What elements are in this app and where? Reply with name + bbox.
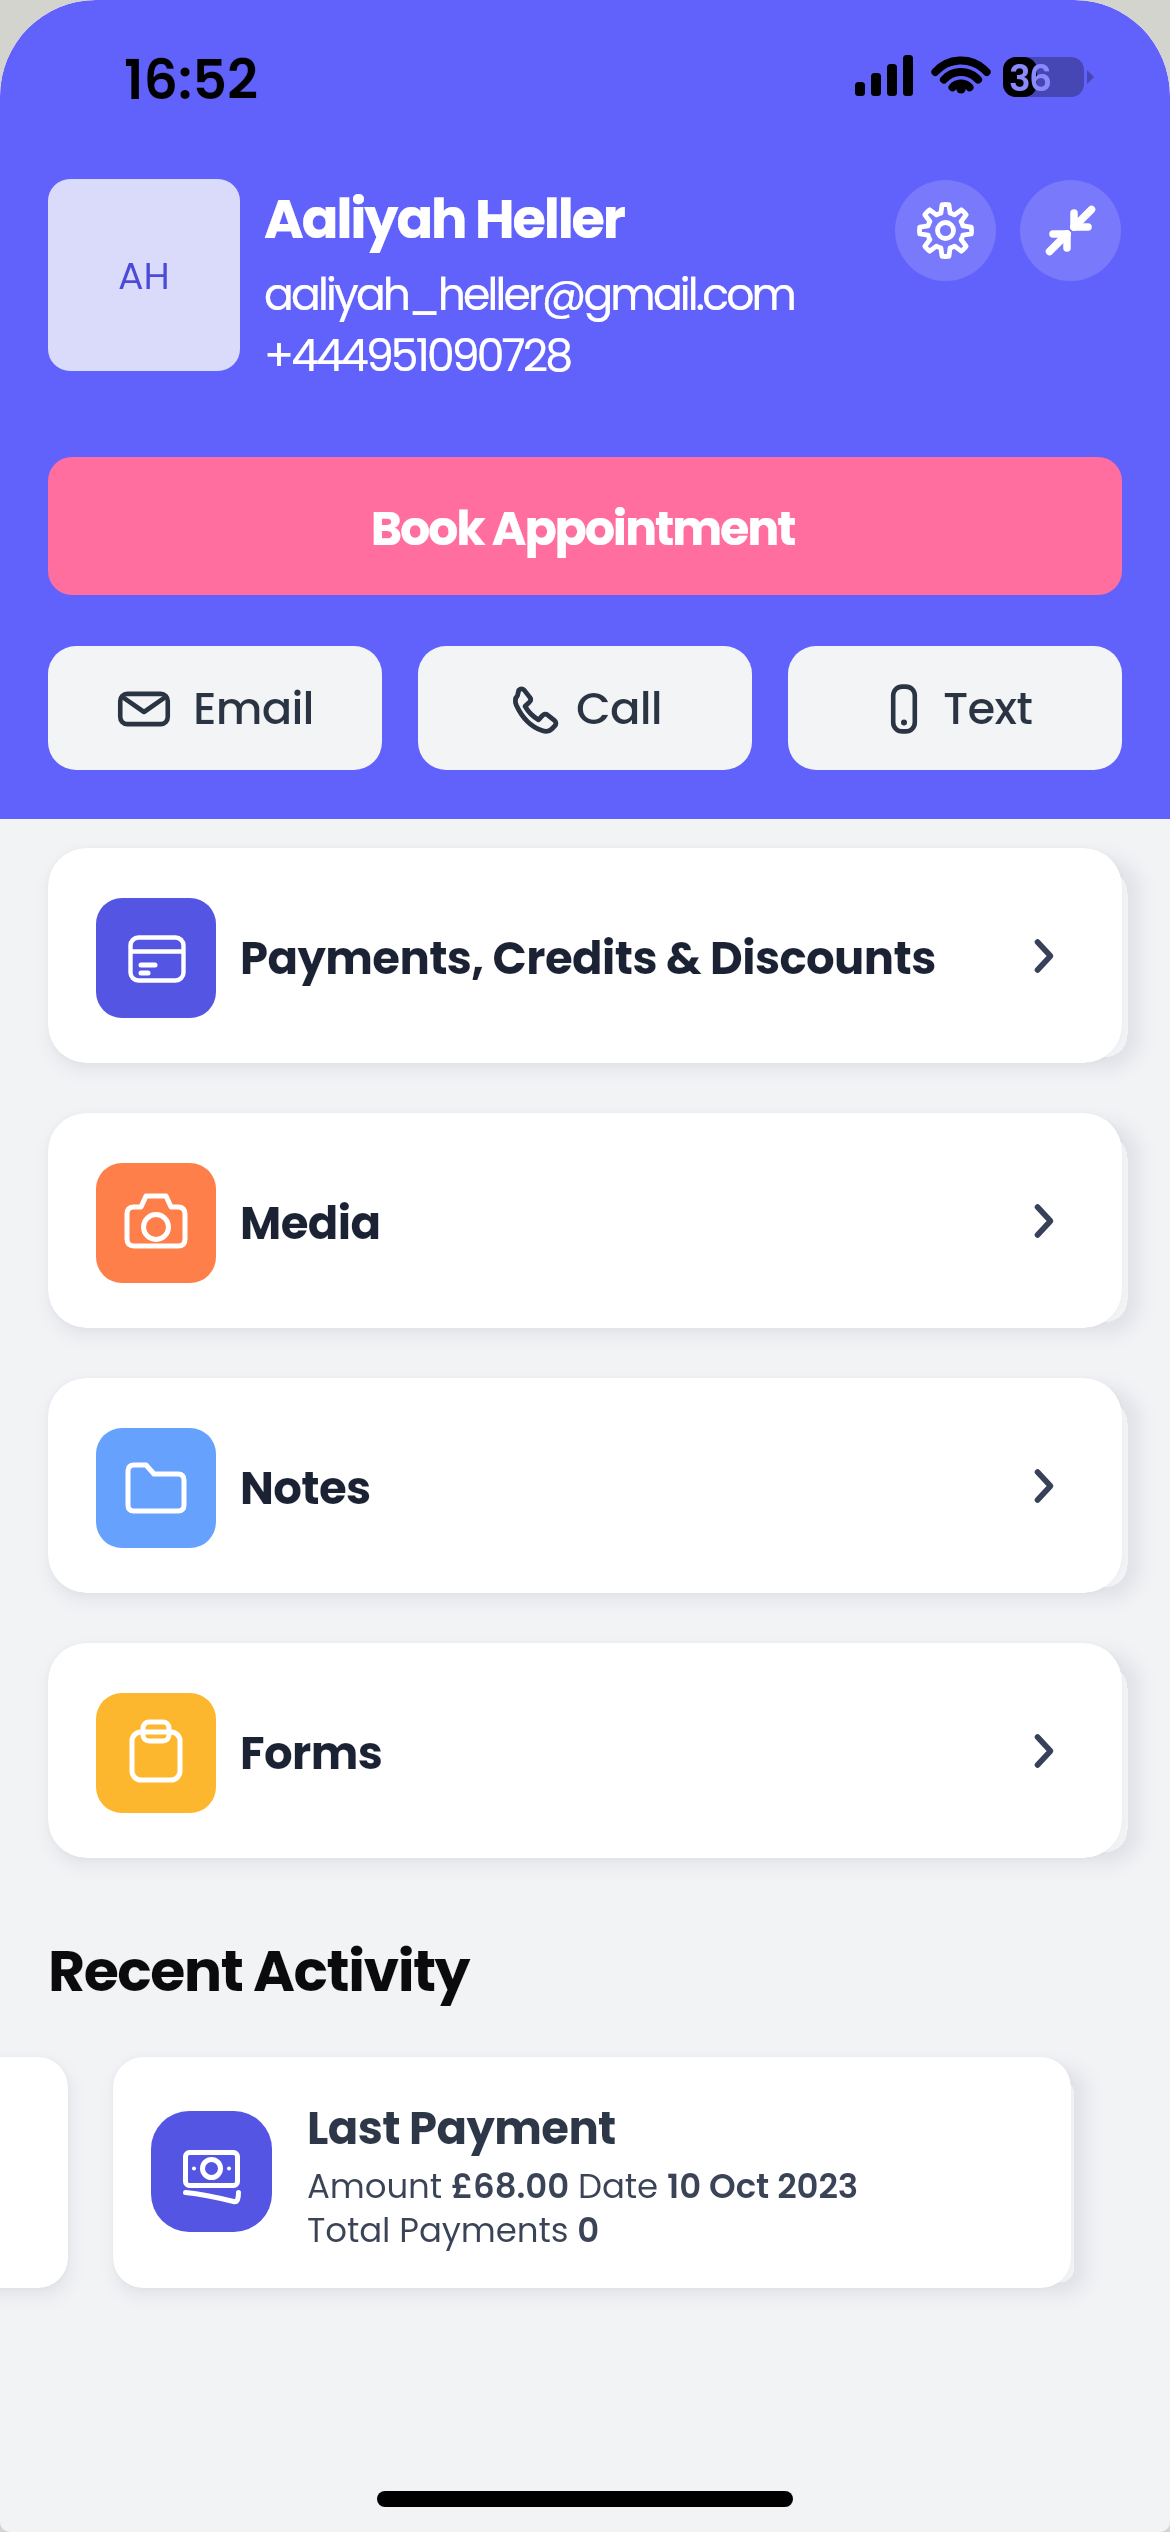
staticText: 16:52 — [124, 42, 259, 118]
staticText: Email — [193, 677, 314, 740]
button[interactable]: Payments, Credits & Discounts — [48, 848, 1122, 1063]
staticText: Text — [943, 677, 1033, 740]
button[interactable]: Book Appointment — [48, 457, 1122, 595]
staticText: Call — [576, 677, 662, 740]
button[interactable]: Text — [788, 646, 1122, 770]
button[interactable]: Forms — [48, 1643, 1122, 1858]
staticText: AH — [118, 249, 170, 302]
staticText: Media — [240, 1192, 381, 1255]
button[interactable]: Notes — [48, 1378, 1122, 1593]
staticText: Forms — [240, 1722, 383, 1785]
staticText: +444951090728 — [264, 325, 571, 387]
button[interactable]: Call — [418, 646, 752, 770]
button[interactable]: Media — [48, 1113, 1122, 1328]
staticText: 36 — [1009, 53, 1051, 103]
staticText: Amount £68.00 Date 10 Oct 2023 — [307, 2162, 859, 2210]
staticText: Notes — [240, 1457, 371, 1520]
staticText: aaliyah_heller@gmail.com — [264, 264, 795, 326]
staticText: Recent Activity — [48, 1931, 470, 2011]
staticText: Book Appointment — [371, 496, 795, 562]
staticText: Last Payment — [307, 2097, 616, 2160]
staticText: Payments, Credits & Discounts — [240, 927, 936, 990]
button[interactable]: Email — [48, 646, 382, 770]
button[interactable]: Collapse — [1020, 180, 1121, 281]
button[interactable]: Settings — [895, 180, 996, 281]
staticText: Total Payments 0 — [307, 2206, 600, 2254]
staticText: Aaliyah Heller — [264, 181, 624, 257]
button[interactable]: Last Payment — [113, 2057, 1071, 2288]
